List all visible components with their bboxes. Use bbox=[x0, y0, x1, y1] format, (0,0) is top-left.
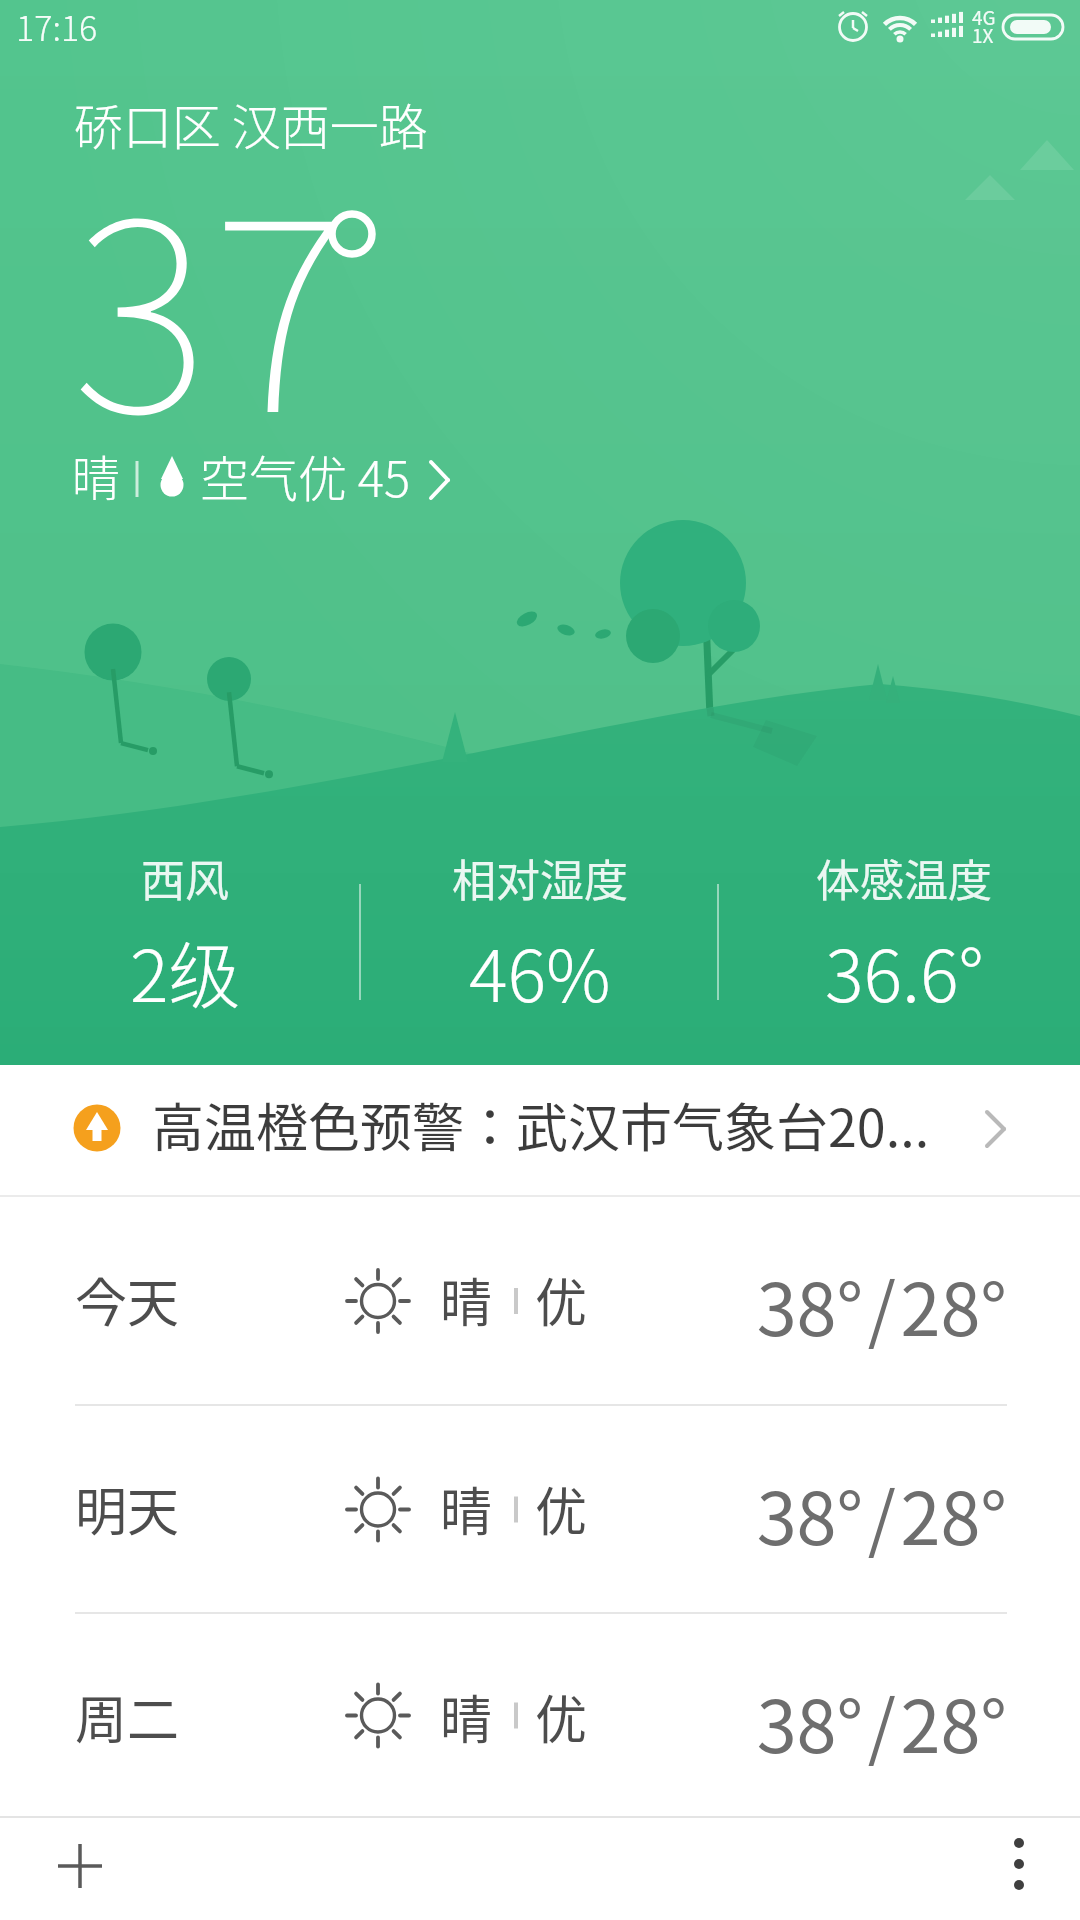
staticText: 38° / 28° bbox=[640, 1461, 1007, 1565]
staticText: 晴 bbox=[440, 1679, 493, 1754]
staticText: 今天 bbox=[75, 1262, 180, 1337]
staticText: 36.6° bbox=[825, 918, 984, 1022]
button[interactable]: 明天 bbox=[0, 1406, 1080, 1613]
staticText: 46% bbox=[469, 918, 611, 1022]
staticText: 优 bbox=[535, 1471, 588, 1546]
staticText: 37 bbox=[72, 108, 354, 487]
staticText: 优 bbox=[535, 1679, 588, 1754]
button[interactable]: 今天 bbox=[0, 1197, 1080, 1405]
staticText: 38° / 28° bbox=[640, 1252, 1007, 1356]
staticText: 硚口区 汉西一路 bbox=[74, 88, 428, 159]
button[interactable]: 高温橙色预警：武汉市气象台20... bbox=[0, 1066, 1080, 1196]
staticText: 高温橙色预警：武汉市气象台20... bbox=[152, 1087, 930, 1162]
staticText: 晴 bbox=[440, 1262, 493, 1337]
staticText: 西风 bbox=[141, 846, 229, 910]
staticText: 晴 bbox=[440, 1471, 493, 1546]
staticText: 体感温度 bbox=[816, 846, 992, 910]
staticText: 明天 bbox=[75, 1471, 180, 1546]
staticText: 优 bbox=[535, 1262, 588, 1337]
staticText: 38° / 28° bbox=[640, 1669, 1007, 1773]
staticText: 2级 bbox=[130, 918, 241, 1022]
button[interactable]: 周二 bbox=[0, 1614, 1080, 1817]
button[interactable] bbox=[30, 1818, 130, 1918]
staticText: 空气优 45 bbox=[200, 440, 411, 511]
staticText: 1X bbox=[972, 21, 994, 49]
staticText: 相对湿度 bbox=[452, 846, 628, 910]
button[interactable] bbox=[969, 1818, 1069, 1918]
staticText: 4G bbox=[972, 3, 996, 31]
button[interactable]: 晴 bbox=[55, 433, 475, 513]
staticText: 周二 bbox=[75, 1679, 180, 1754]
staticText: 晴 bbox=[72, 440, 121, 510]
staticText: 17:16 bbox=[16, 2, 98, 51]
